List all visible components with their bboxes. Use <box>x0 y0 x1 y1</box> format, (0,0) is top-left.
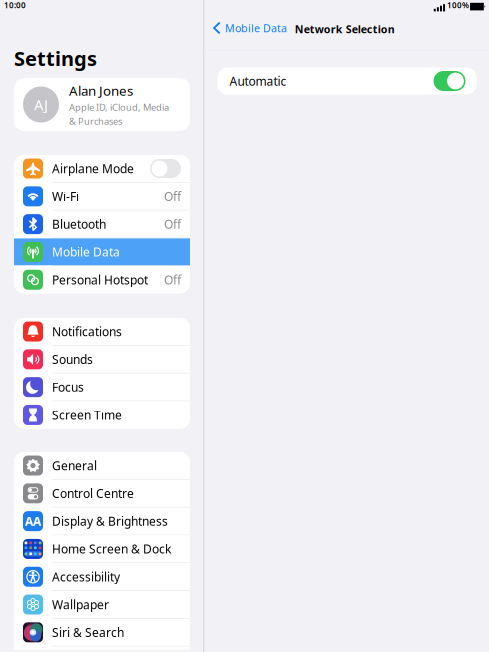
button[interactable]: Control Centre <box>14 480 190 507</box>
staticText: Off <box>164 216 181 232</box>
staticText: Siri & Search <box>52 624 124 640</box>
staticText: Personal Hotspot <box>52 272 148 288</box>
button[interactable]: Sounds <box>14 346 190 373</box>
staticText: & Purchases <box>69 115 122 127</box>
staticText: Alan Jones <box>69 82 133 99</box>
button[interactable]: Personal Hotspot <box>14 266 190 293</box>
staticText: Mobile Data <box>225 21 287 35</box>
staticText: Focus <box>52 379 84 395</box>
staticText: AA <box>25 513 41 529</box>
staticText: Display & Brightness <box>52 513 168 529</box>
button[interactable]: General <box>14 452 190 479</box>
button[interactable]: Home Screen & Dock <box>14 535 190 562</box>
button[interactable]: Touch ID & Passcode <box>14 647 190 652</box>
staticText: Network Selection <box>295 22 395 36</box>
button[interactable]: Mobile Data <box>14 238 190 265</box>
button[interactable]: AJ <box>14 78 190 131</box>
staticText: Wi-Fi <box>52 188 79 204</box>
staticText: Automatic <box>229 73 286 89</box>
staticText: Notifications <box>52 324 122 339</box>
button[interactable]: Accessibility <box>14 563 190 590</box>
staticText: Settings <box>14 45 97 72</box>
button[interactable]: Back to Mobile Data <box>211 18 289 38</box>
staticText: Mobile Data <box>52 244 120 260</box>
staticText: Airplane Mode <box>52 161 134 176</box>
staticText: Apple ID, iCloud, Media <box>69 101 169 113</box>
staticText: Screen Time <box>52 407 122 423</box>
staticText: 100% <box>447 0 469 10</box>
staticText: Home Screen & Dock <box>52 541 171 557</box>
button[interactable]: Airplane Mode <box>14 155 190 182</box>
staticText: General <box>52 458 97 473</box>
staticText: Off <box>164 188 181 204</box>
button[interactable]: Wallpaper <box>14 591 190 618</box>
staticText: Bluetooth <box>52 216 106 232</box>
button[interactable]: Screen Time <box>14 401 190 428</box>
button[interactable]: Notifications <box>14 318 190 345</box>
staticText: Wallpaper <box>52 597 109 612</box>
staticText: Control Centre <box>52 485 134 501</box>
staticText: Sounds <box>52 351 93 367</box>
staticText: Off <box>164 272 181 288</box>
button[interactable]: Automatic <box>217 67 476 94</box>
staticText: AJ <box>34 95 48 114</box>
button[interactable]: AA <box>14 508 190 535</box>
button[interactable]: Bluetooth <box>14 211 190 238</box>
staticText: Accessibility <box>52 569 120 585</box>
button[interactable]: Siri & Search <box>14 619 190 646</box>
button[interactable]: Wi-Fi <box>14 183 190 210</box>
staticText: 10:00 <box>4 0 26 10</box>
button[interactable]: Focus <box>14 374 190 401</box>
